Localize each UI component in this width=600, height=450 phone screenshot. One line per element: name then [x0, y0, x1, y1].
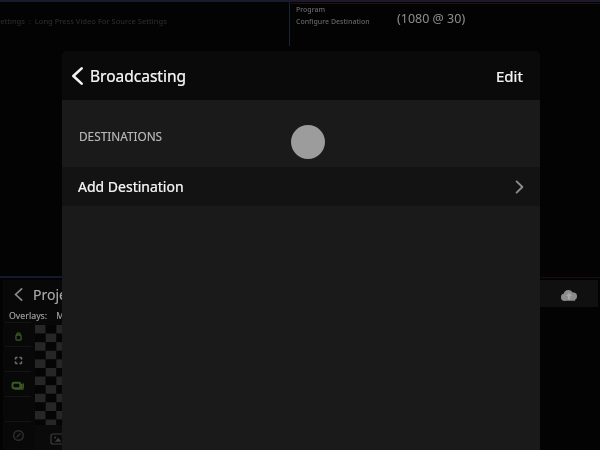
button[interactable]: Edit	[479, 56, 540, 96]
button[interactable]	[3, 425, 33, 446]
staticText: Settings : Long Press Video For Source S…	[0, 16, 167, 26]
staticText: DESTINATIONS	[79, 128, 163, 144]
staticText: (1080 @ 30)	[397, 10, 466, 27]
staticText: Configure Destination	[296, 17, 370, 27]
staticText: Edit	[496, 66, 523, 86]
staticText: Program	[296, 5, 326, 15]
button[interactable]: Broadcasting	[62, 59, 195, 92]
button[interactable]	[3, 326, 33, 347]
staticText: Overlays: Main	[9, 310, 77, 322]
button[interactable]: Add Destination	[62, 167, 540, 206]
button[interactable]: Upload to cloud	[561, 288, 577, 301]
staticText: Broadcasting	[90, 65, 187, 86]
button[interactable]	[3, 375, 33, 396]
button[interactable]	[3, 350, 33, 371]
staticText: Add Destination	[78, 177, 184, 196]
staticText: Project	[33, 285, 79, 304]
